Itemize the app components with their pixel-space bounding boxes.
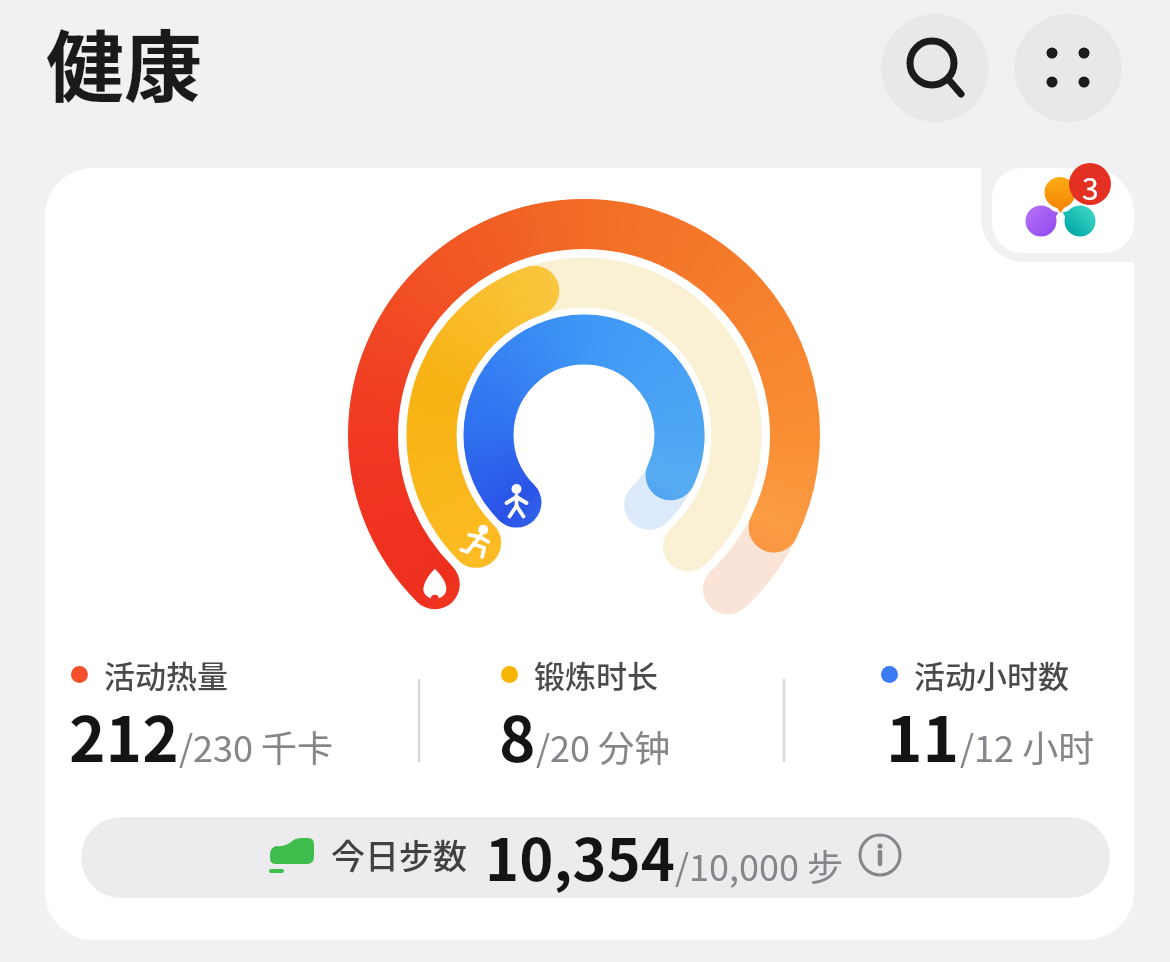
staticText: 锻炼时长 (534, 652, 658, 697)
staticText: 活动小时数 (914, 652, 1069, 697)
button[interactable] (992, 168, 1134, 253)
staticText: /12 小时 (960, 720, 1095, 772)
staticText: 11 (886, 690, 960, 780)
staticText: /20 分钟 (536, 720, 671, 772)
staticText: 212 (69, 690, 179, 780)
staticText: 3 (1082, 165, 1099, 208)
button[interactable]: 今日步数 (81, 817, 1110, 898)
staticText: /230 千卡 (179, 720, 334, 772)
button[interactable] (1014, 14, 1122, 122)
staticText: /10,000 步 (675, 839, 844, 891)
staticText: 10,354 (485, 817, 675, 895)
button[interactable] (881, 14, 989, 122)
staticText: 今日步数 (331, 830, 467, 879)
staticText: 活动热量 (104, 652, 228, 697)
staticText: 8 (499, 690, 536, 780)
staticText: 健康 (46, 6, 203, 119)
